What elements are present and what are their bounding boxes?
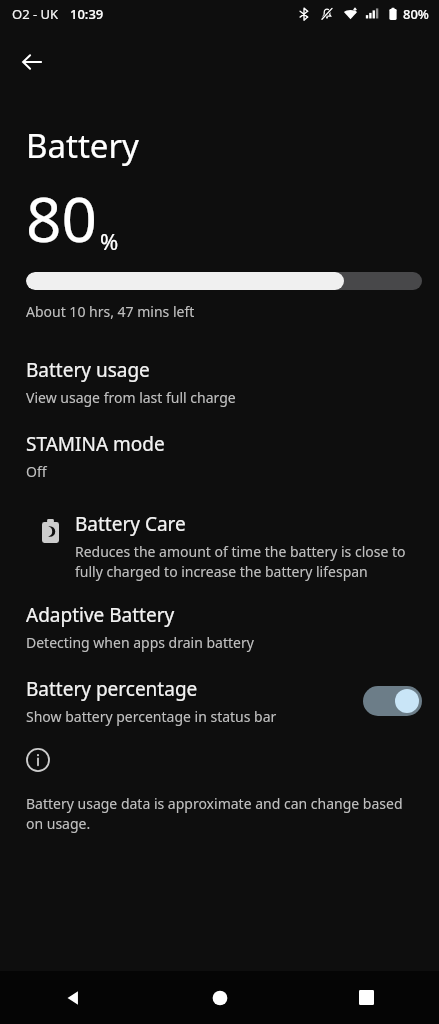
staticText: O2 - UK bbox=[12, 5, 59, 23]
staticText: Adaptive Battery bbox=[26, 602, 175, 628]
staticText: % bbox=[100, 226, 119, 256]
staticText: View usage from last full charge bbox=[26, 388, 236, 407]
staticText: Off bbox=[26, 462, 47, 481]
staticText: Battery usage bbox=[26, 357, 150, 383]
staticText: Show battery percentage in status bar bbox=[26, 707, 277, 726]
staticText: Battery Care bbox=[75, 511, 186, 537]
button[interactable]: STAMINA mode bbox=[0, 431, 439, 483]
button[interactable]: Home bbox=[147, 971, 293, 1024]
staticText: Detecting when apps drain battery bbox=[26, 633, 254, 652]
button[interactable]: Battery usage bbox=[0, 349, 439, 409]
staticText: 80% bbox=[403, 5, 429, 23]
button[interactable]: Back bbox=[0, 971, 147, 1024]
button[interactable]: Battery percentage toggle bbox=[363, 686, 422, 716]
staticText: Battery bbox=[26, 123, 139, 168]
button[interactable]: Adaptive Battery bbox=[0, 602, 439, 654]
staticText: Battery percentage bbox=[26, 676, 198, 702]
staticText: 80 bbox=[26, 176, 97, 260]
button[interactable]: Battery Care bbox=[0, 509, 439, 582]
staticText: 10:39 bbox=[70, 5, 104, 23]
button[interactable]: Recent apps bbox=[293, 971, 439, 1024]
button[interactable]: Back bbox=[10, 40, 54, 84]
staticText: Reduces the amount of time the battery i… bbox=[75, 542, 406, 582]
staticText: About 10 hrs, 47 mins left bbox=[26, 302, 195, 321]
button[interactable]: Battery percentage bbox=[0, 676, 439, 726]
staticText: Battery usage data is approximate and ca… bbox=[26, 794, 403, 834]
staticText: STAMINA mode bbox=[26, 431, 165, 457]
